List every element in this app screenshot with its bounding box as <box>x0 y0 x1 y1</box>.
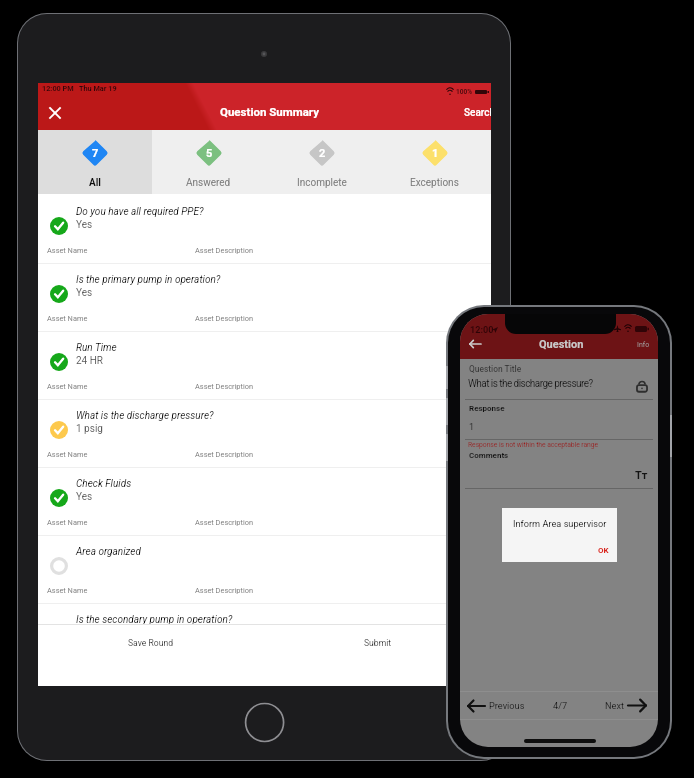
button[interactable]: Text formatting <box>634 468 649 483</box>
staticText: Previous <box>489 700 525 711</box>
staticText: 100% <box>456 88 472 96</box>
staticText: Asset Name <box>47 382 88 391</box>
button[interactable]: Info <box>637 341 650 349</box>
staticText: Yes <box>76 287 93 299</box>
staticText: 12:00 PM Thu Mar 19 <box>42 84 117 93</box>
staticText: Asset Description <box>195 586 254 595</box>
staticText: 5 <box>206 147 213 160</box>
staticText: Asset Name <box>47 450 88 459</box>
button[interactable]: Search <box>464 107 491 119</box>
staticText: Asset Description <box>195 314 254 323</box>
staticText: Response is not within the acceptable ra… <box>468 441 599 449</box>
staticText: Question Summary <box>220 105 319 118</box>
staticText: Asset Description <box>195 450 254 459</box>
staticText: All <box>89 177 102 189</box>
button[interactable]: Back <box>466 335 484 353</box>
staticText: Check Fluids <box>76 478 132 490</box>
button[interactable]: Is the primary pump in operation? <box>38 264 491 332</box>
staticText: Asset Description <box>195 518 254 527</box>
staticText: Submit <box>364 638 392 648</box>
button[interactable]: OK <box>598 546 609 555</box>
button[interactable]: What is the discharge pressure? <box>38 400 491 468</box>
staticText: Asset Description <box>195 382 254 391</box>
staticText: Asset Name <box>47 246 88 255</box>
staticText: Area organized <box>76 546 141 558</box>
staticText: Run Time <box>76 342 117 354</box>
staticText: Asset Name <box>47 586 88 595</box>
staticText: Yes <box>76 219 93 231</box>
staticText: Is the secondary pump in operation? <box>76 614 233 626</box>
staticText: What is the discharge pressure? <box>468 378 593 390</box>
staticText: Question Title <box>469 364 522 374</box>
staticText: 2 <box>319 147 326 160</box>
button[interactable]: Run Time <box>38 332 491 400</box>
staticText: Yes <box>76 491 93 503</box>
staticText: What is the discharge pressure? <box>76 410 214 422</box>
staticText: 1 psig <box>76 423 103 435</box>
button[interactable]: Area organized <box>38 536 491 604</box>
staticText: Save Round <box>128 638 174 648</box>
button[interactable]: Is the secondary pump in operation? <box>38 604 491 672</box>
staticText: Incomplete <box>297 177 347 189</box>
button[interactable]: Save Round <box>38 632 264 654</box>
button[interactable]: Close <box>44 102 66 124</box>
staticText: Tт <box>635 469 648 482</box>
button[interactable]: 7 <box>38 130 152 194</box>
button[interactable]: Next <box>605 691 647 720</box>
staticText: 1 <box>469 422 475 433</box>
staticText: Comments <box>469 451 509 460</box>
button[interactable]: 5 <box>152 130 265 194</box>
staticText: Asset Description <box>195 246 254 255</box>
staticText: Info <box>637 341 650 349</box>
staticText: OK <box>598 546 609 555</box>
button[interactable]: Check Fluids <box>38 468 491 536</box>
staticText: Response <box>469 404 505 413</box>
button[interactable]: Submit <box>264 632 491 654</box>
button[interactable]: Locked <box>635 379 649 393</box>
staticText: 1 <box>432 147 439 160</box>
button[interactable]: Previous <box>467 691 525 720</box>
staticText: Search <box>464 107 491 119</box>
button[interactable]: 2 <box>265 130 378 194</box>
staticText: 4/7 <box>553 700 568 711</box>
staticText: Do you have all required PPE? <box>76 206 204 218</box>
staticText: Asset Name <box>47 518 88 527</box>
staticText: 24 HR <box>76 355 104 367</box>
button[interactable]: Do you have all required PPE? <box>38 196 491 264</box>
staticText: Next <box>605 700 624 711</box>
staticText: 7 <box>92 147 99 160</box>
staticText: Answered <box>186 177 231 189</box>
staticText: Inform Area supervisor <box>513 518 607 529</box>
button[interactable]: 1 <box>378 130 491 194</box>
staticText: 12:00 <box>470 325 494 336</box>
staticText: Is the primary pump in operation? <box>76 274 221 286</box>
staticText: Asset Name <box>47 314 88 323</box>
staticText: Exceptions <box>410 177 459 189</box>
staticText: Question <box>539 338 584 351</box>
